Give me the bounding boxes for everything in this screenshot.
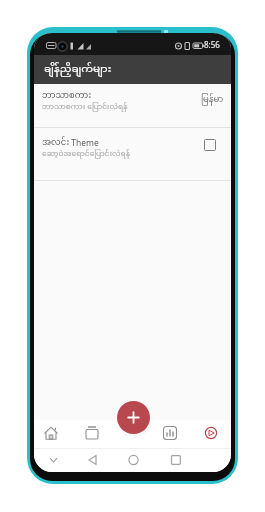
staticText: ဆော့ဝဲအရောင်ပြောင်းလဲရန် — [42, 149, 130, 159]
staticText: ဘာသာစကား ပြောင်းလဲရန် — [42, 102, 128, 112]
staticText: ချိန်ညှိချက်များ — [44, 63, 112, 77]
button[interactable]: အလင်း Theme — [34, 128, 231, 180]
staticText: 8:56 — [204, 39, 220, 50]
button[interactable] — [74, 420, 114, 448]
button[interactable] — [34, 420, 74, 448]
button[interactable] — [192, 420, 231, 448]
staticText: ဘာသာစကား — [42, 90, 92, 102]
staticText: အလင်း Theme — [42, 137, 99, 149]
button[interactable] — [153, 420, 192, 448]
button[interactable] — [117, 401, 150, 434]
button[interactable]: ဘာသာစကား — [34, 84, 231, 127]
staticText: မြန်မာ — [201, 94, 224, 106]
button[interactable] — [204, 139, 216, 151]
